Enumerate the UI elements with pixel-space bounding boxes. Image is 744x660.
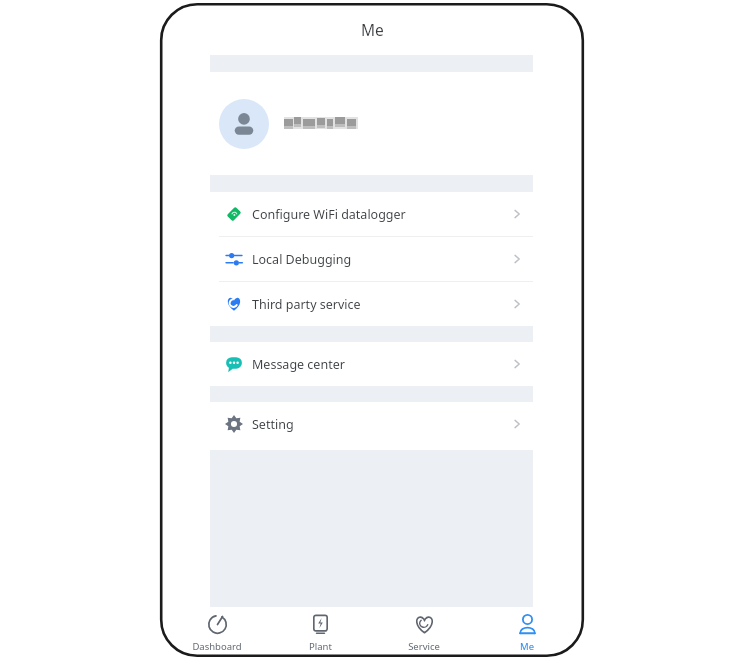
staticText: Third party service	[252, 296, 361, 313]
button[interactable]: Third party service	[210, 282, 533, 326]
staticText: Service	[408, 640, 440, 653]
button[interactable]: Setting	[210, 402, 533, 446]
staticText: Me	[361, 19, 384, 40]
button[interactable]: Configure WiFi datalogger	[210, 192, 533, 236]
button[interactable]: Me	[481, 607, 573, 653]
staticText: Dashboard	[192, 640, 242, 653]
button[interactable]: Plant	[274, 607, 366, 653]
staticText: Me	[520, 640, 534, 653]
staticText: Configure WiFi datalogger	[252, 206, 406, 223]
staticText: Local Debugging	[252, 251, 352, 268]
button[interactable]: Message center	[210, 342, 533, 386]
button[interactable]: Service	[378, 607, 470, 653]
staticText: Plant	[309, 640, 332, 653]
staticText: Setting	[252, 416, 294, 433]
button[interactable]: Local Debugging	[210, 237, 533, 281]
staticText: Message center	[252, 356, 345, 373]
button[interactable]	[210, 72, 533, 175]
button[interactable]: Dashboard	[171, 607, 263, 653]
